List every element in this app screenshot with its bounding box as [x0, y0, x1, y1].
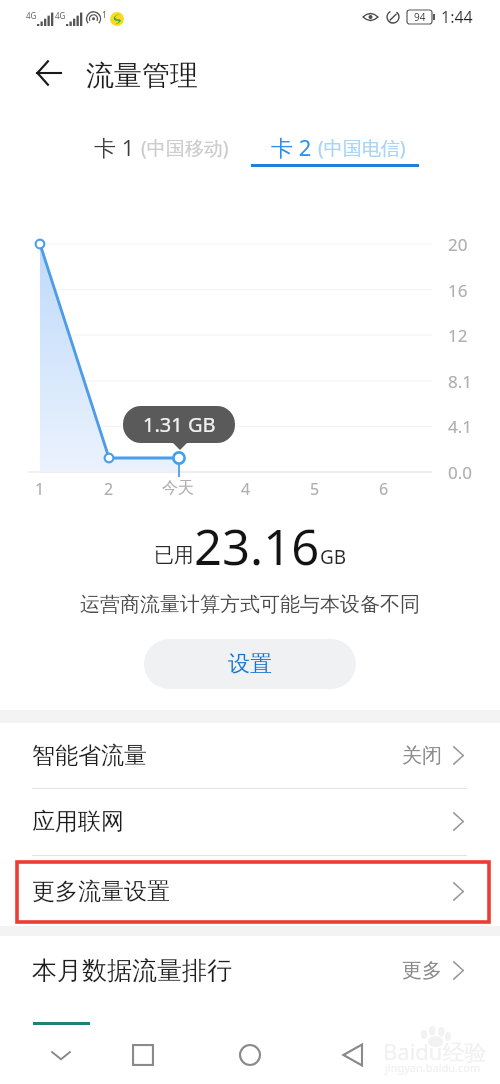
button[interactable]: 卡 1: [56, 127, 266, 167]
button[interactable]: Recents: [119, 1031, 167, 1079]
staticText: 1.31 GB: [143, 411, 216, 438]
staticText: 4: [241, 478, 251, 500]
staticText: 本月数据流量排行: [32, 955, 232, 986]
staticText: 智能省流量: [32, 741, 147, 770]
staticText: 4G: [26, 10, 37, 21]
staticText: 4.1: [448, 415, 473, 438]
button[interactable]: Back: [329, 1031, 377, 1079]
staticText: 1:44: [441, 6, 473, 28]
staticText: 更多: [402, 958, 442, 983]
staticText: 流量管理: [86, 58, 198, 93]
staticText: 运营商流量计算方式可能与本设备不同: [80, 592, 420, 617]
staticText: GB: [320, 544, 347, 570]
staticText: 2: [104, 478, 114, 500]
staticText: (中国移动): [141, 135, 229, 161]
button[interactable]: Back: [28, 50, 70, 96]
staticText: 卡 2: [271, 132, 318, 162]
staticText: 16: [448, 279, 468, 302]
button[interactable]: 卡 2: [233, 127, 443, 167]
staticText: 12: [448, 324, 468, 347]
staticText: 今天: [162, 478, 194, 498]
staticText: 关闭: [402, 743, 442, 768]
staticText: 卡 1: [94, 132, 141, 162]
staticText: (中国电信): [318, 135, 406, 161]
staticText: 更多流量设置: [32, 877, 170, 906]
staticText: 0.0: [448, 461, 473, 484]
button[interactable]: 智能省流量: [0, 723, 500, 788]
staticText: 6: [379, 478, 389, 500]
staticText: 8.1: [448, 370, 473, 393]
staticText: 4G: [55, 10, 66, 21]
button[interactable]: 设置: [144, 639, 356, 689]
staticText: 23.16: [194, 513, 320, 580]
staticText: 设置: [228, 650, 272, 678]
staticText: jingyan.baidu.com: [385, 1060, 481, 1075]
button[interactable]: Home: [226, 1031, 274, 1079]
button[interactable]: 应用联网: [0, 788, 500, 854]
staticText: Baidu经验: [383, 1036, 487, 1066]
button[interactable]: Hide: [37, 1031, 85, 1079]
button[interactable]: 更多流量设置: [0, 856, 500, 926]
staticText: 1: [102, 9, 107, 20]
button[interactable]: 本月数据流量排行: [0, 936, 500, 1004]
staticText: 94: [414, 10, 426, 24]
staticText: 已用: [154, 543, 194, 568]
staticText: 1: [35, 478, 45, 500]
staticText: 20: [448, 233, 468, 256]
staticText: 5: [310, 478, 320, 500]
staticText: 应用联网: [32, 807, 124, 836]
